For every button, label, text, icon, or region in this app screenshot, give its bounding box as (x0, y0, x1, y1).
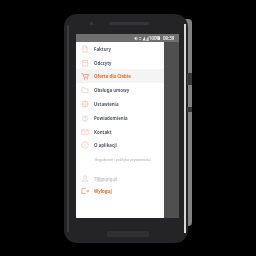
button[interactable]: Powiadomienia (76, 111, 164, 125)
staticText: Faktury (94, 46, 111, 52)
button[interactable]: Wyloguj (76, 184, 164, 197)
staticText: Obsługa umowy (94, 87, 130, 93)
button[interactable]: Oferta dla Ciebie (76, 69, 164, 83)
button[interactable]: Odczyty (76, 56, 164, 70)
button[interactable]: O aplikacji (76, 138, 164, 152)
staticText: Kontakt (94, 129, 112, 135)
staticText: O aplikacji (94, 142, 117, 148)
staticText: Regulamin i polityka prywatności (95, 157, 151, 162)
staticText: 100% (149, 35, 161, 41)
staticText: Powiadomienia (94, 115, 128, 121)
staticText: 09:39 (163, 35, 175, 41)
staticText: 7@jpqng.pl (94, 176, 118, 182)
button[interactable]: 7@jpqng.pl (76, 172, 164, 185)
button[interactable]: Kontakt (76, 125, 164, 139)
staticText: Ustawienia (94, 101, 119, 107)
staticText: Oferta dla Ciebie (94, 73, 131, 79)
button[interactable]: Ustawienia (76, 97, 164, 111)
button[interactable]: Faktury (76, 42, 164, 56)
staticText: Odczyty (94, 60, 112, 66)
button[interactable]: Obsługa umowy (76, 83, 164, 97)
staticText: Wyloguj (94, 188, 112, 194)
